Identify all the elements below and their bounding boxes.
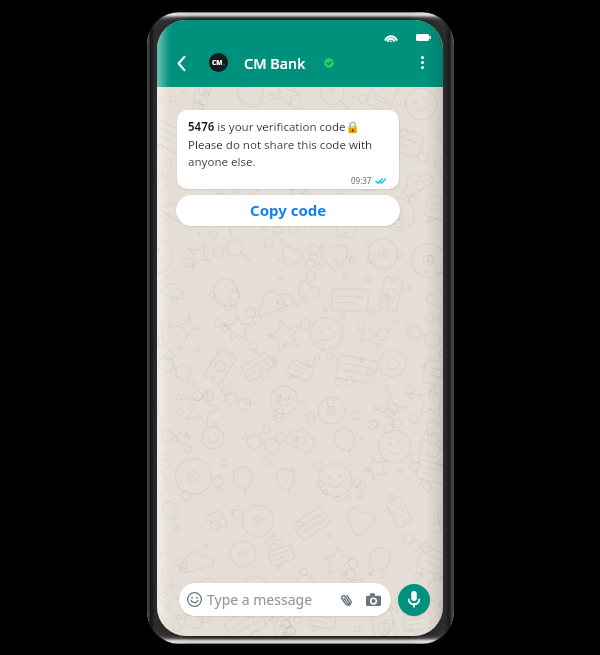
staticText: 09:37 [351,175,372,186]
other: Camera [366,593,381,606]
button[interactable]: Copy code [176,195,400,226]
staticText: Type a message [207,590,313,609]
button[interactable]: CM [209,53,228,72]
button[interactable]: Back [167,49,195,77]
staticText: 5476 is your verification code🔒 Please d… [188,119,399,169]
button[interactable]: Voice message [398,584,430,616]
button[interactable]: CM Bank [244,50,306,76]
staticText: Copy code [250,200,327,220]
button[interactable]: 5476 is your verification code🔒 Please d… [177,110,399,189]
button[interactable]: More options [410,50,434,74]
button[interactable]: Type a message [179,583,391,616]
other: Attach [339,593,354,607]
staticText: CM [212,58,223,67]
staticText: CM Bank [244,53,306,73]
